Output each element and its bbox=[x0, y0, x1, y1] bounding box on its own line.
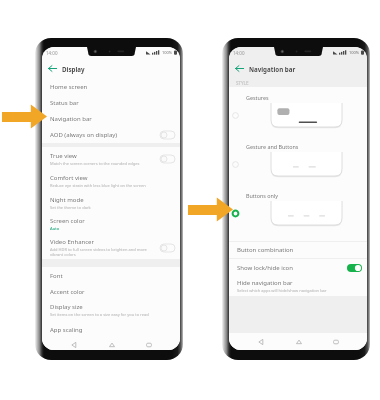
staticText: Set the theme to dark bbox=[50, 205, 91, 210]
button[interactable]: True view bbox=[42, 147, 180, 170]
staticText: Add HDR to full screen videos to brighte… bbox=[50, 247, 160, 257]
staticText: Reduce eye strain with less blue light o… bbox=[50, 183, 146, 188]
button[interactable]: Back bbox=[55, 339, 93, 350]
staticText: Night mode bbox=[50, 196, 84, 204]
button[interactable]: App scaling bbox=[42, 321, 180, 339]
button[interactable]: Back bbox=[242, 333, 280, 350]
staticText: True view bbox=[50, 152, 77, 160]
button[interactable]: Buttons only bbox=[229, 192, 367, 241]
button[interactable]: Toggle True view bbox=[160, 155, 175, 163]
staticText: Video Enhancer bbox=[50, 238, 94, 246]
button[interactable]: AOD (always on display) bbox=[42, 127, 180, 143]
staticText: Navigation bar bbox=[249, 65, 296, 73]
button[interactable]: Gesture and Buttons bbox=[229, 143, 367, 192]
staticText: Display bbox=[62, 65, 85, 73]
staticText: STYLE bbox=[236, 80, 249, 86]
staticText: AOD (always on display) bbox=[50, 131, 118, 139]
button[interactable]: Toggle Show lock/hide icon bbox=[347, 264, 362, 272]
button[interactable]: Home bbox=[93, 339, 130, 350]
staticText: Buttons only bbox=[246, 192, 279, 199]
button[interactable]: Video Enhancer bbox=[42, 236, 180, 259]
staticText: 100% bbox=[162, 50, 173, 55]
button[interactable]: Status bar bbox=[42, 95, 180, 111]
staticText: 100% bbox=[349, 50, 360, 55]
button[interactable]: Display size bbox=[42, 299, 180, 321]
button[interactable]: Back bbox=[235, 64, 244, 73]
staticText: Comfort view bbox=[50, 174, 88, 182]
staticText: Select which apps will hide/show navigat… bbox=[237, 288, 327, 293]
button[interactable]: Toggle AOD (always on display) bbox=[160, 131, 175, 139]
button[interactable]: Comfort view bbox=[42, 170, 180, 192]
staticText: Show lock/hide icon bbox=[237, 264, 293, 272]
staticText: Navigation bar bbox=[50, 115, 92, 123]
button[interactable]: Accent color bbox=[42, 284, 180, 299]
button[interactable]: Gestures bbox=[229, 94, 367, 143]
staticText: 14:00 bbox=[233, 50, 245, 56]
button[interactable]: Night mode bbox=[42, 192, 180, 213]
button[interactable]: Navigation bar bbox=[42, 111, 180, 127]
button[interactable]: Toggle Video Enhancer bbox=[160, 244, 175, 252]
staticText: 14:00 bbox=[46, 50, 58, 56]
staticText: Hide navigation bar bbox=[237, 279, 293, 287]
button[interactable]: Screen color bbox=[42, 213, 180, 236]
button[interactable]: Recents bbox=[130, 339, 167, 350]
button[interactable]: Home screen bbox=[42, 79, 180, 95]
staticText: App scaling bbox=[50, 326, 83, 334]
staticText: Gestures bbox=[246, 94, 269, 101]
staticText: Home screen bbox=[50, 83, 88, 91]
button[interactable]: Show lock/hide icon bbox=[229, 259, 367, 276]
staticText: Font bbox=[50, 272, 63, 280]
staticText: Set items on the screen to a size easy f… bbox=[50, 312, 149, 317]
button[interactable]: Hide navigation bar bbox=[229, 276, 367, 296]
staticText: Match the screen corners to the rounded … bbox=[50, 161, 140, 166]
staticText: Auto bbox=[50, 226, 60, 232]
button[interactable]: Font bbox=[42, 267, 180, 284]
staticText: Gesture and Buttons bbox=[246, 143, 299, 150]
staticText: Display size bbox=[50, 303, 83, 311]
staticText: Screen color bbox=[50, 217, 85, 225]
button[interactable]: Home bbox=[280, 333, 317, 350]
button[interactable]: Button combination bbox=[229, 242, 367, 258]
staticText: Accent color bbox=[50, 288, 85, 296]
button[interactable]: Recents bbox=[317, 333, 354, 350]
staticText: Button combination bbox=[237, 246, 294, 254]
button[interactable]: Back bbox=[48, 64, 57, 73]
staticText: Status bar bbox=[50, 99, 79, 107]
